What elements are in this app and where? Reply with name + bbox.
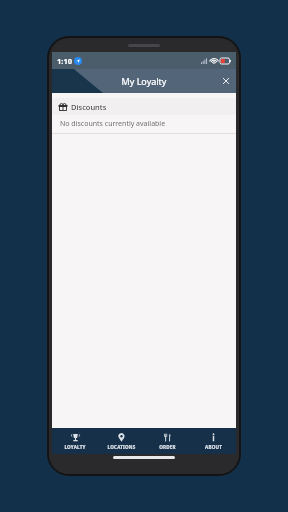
- button[interactable]: Discounts: [52, 98, 236, 115]
- staticText: 1:10: [57, 56, 72, 66]
- staticText: LOYALTY: [64, 444, 86, 450]
- staticText: No discounts currently available: [60, 119, 166, 129]
- button[interactable]: ABOUT: [190, 428, 236, 454]
- staticText: Discounts: [71, 102, 107, 112]
- staticText: ABOUT: [205, 444, 222, 450]
- staticText: My Loyalty: [52, 75, 236, 87]
- staticText: ORDER: [159, 444, 176, 450]
- button[interactable]: LOCATIONS: [98, 428, 144, 454]
- button[interactable]: ORDER: [144, 428, 190, 454]
- button[interactable]: LOYALTY: [52, 428, 98, 454]
- staticText: LOCATIONS: [107, 444, 136, 450]
- button[interactable]: Close: [216, 71, 236, 91]
